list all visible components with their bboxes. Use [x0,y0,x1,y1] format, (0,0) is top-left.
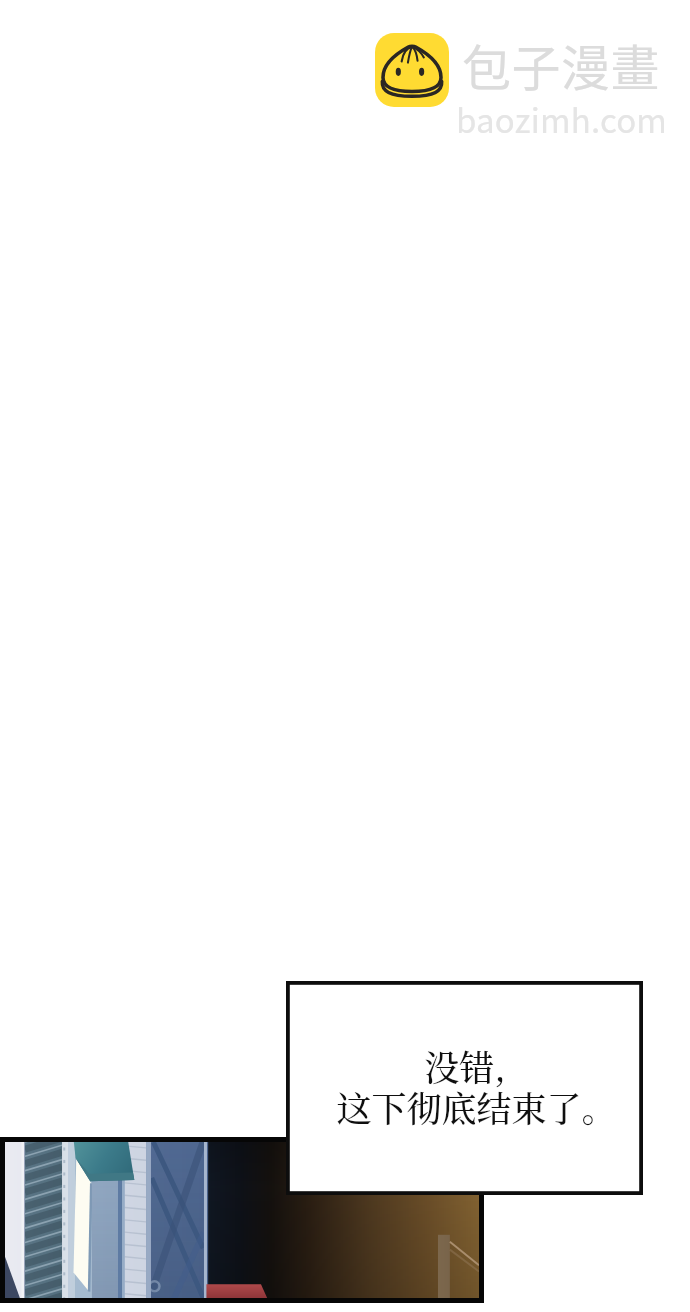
other: baozimh logo [375,33,449,107]
staticText: baozimh.com [456,95,668,143]
staticText: 没错, [424,1041,506,1091]
button[interactable]: baozimh logo [375,33,661,152]
staticText: 包子漫畫 [462,29,661,100]
staticText: 这下彻底结束了。 [336,1082,617,1132]
button[interactable]: 没错, [286,981,643,1195]
